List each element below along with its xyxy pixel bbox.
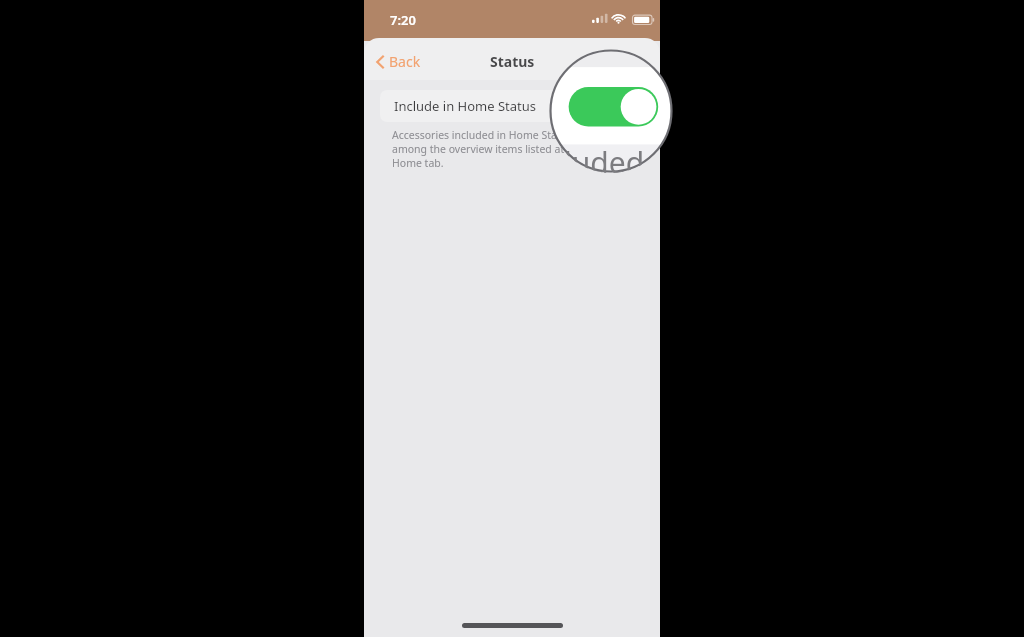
- staticText: Include in Home Status: [394, 97, 536, 115]
- button[interactable]: Include in Home Status: [380, 90, 644, 122]
- staticText: 7:20: [390, 11, 416, 29]
- staticText: Back: [389, 52, 421, 71]
- staticText: Status: [490, 52, 535, 71]
- staticText: luded: [564, 142, 645, 173]
- staticText: Accessories included in Home Status appe…: [392, 128, 642, 170]
- button[interactable]: Magnified toggle on: [549, 49, 673, 173]
- button[interactable]: Back: [372, 48, 425, 75]
